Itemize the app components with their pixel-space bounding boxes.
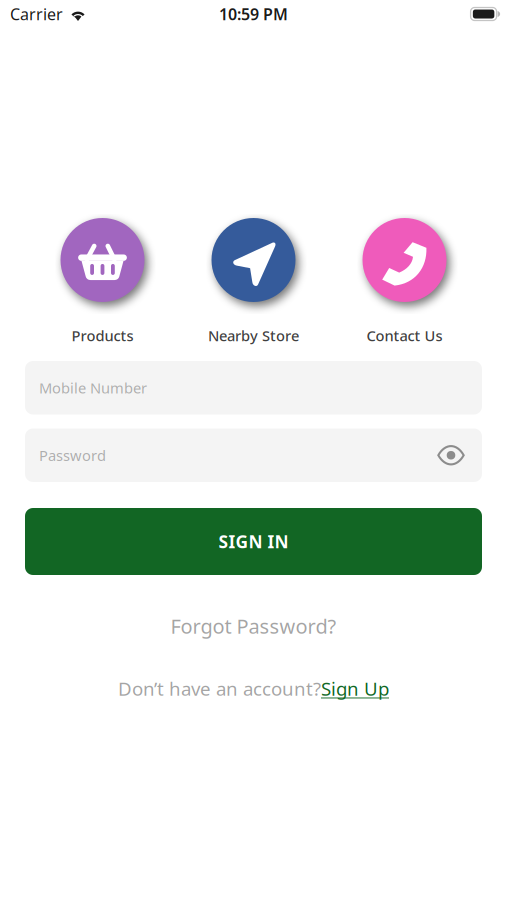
button[interactable]: Sign Up [321,676,389,701]
staticText: Carrier [10,3,63,25]
staticText: 10:59 PM [219,3,288,25]
staticText: SIGN IN [218,530,288,553]
button[interactable]: Show password [437,445,465,465]
button[interactable]: Contact Us [362,218,446,348]
staticText: Password [39,445,106,465]
staticText: Sign Up [321,676,389,701]
staticText: Nearby Store [208,326,299,345]
staticText: Don’t have an account? [118,676,321,701]
button[interactable]: Forgot Password? [0,609,507,643]
button[interactable]: Nearby Store [208,218,299,348]
button[interactable]: Products [60,218,144,348]
staticText: Contact Us [366,326,442,345]
staticText: Forgot Password? [170,613,336,639]
staticText: Mobile Number [39,378,147,397]
button[interactable]: SIGN IN [25,508,482,575]
staticText: Products [71,326,133,345]
